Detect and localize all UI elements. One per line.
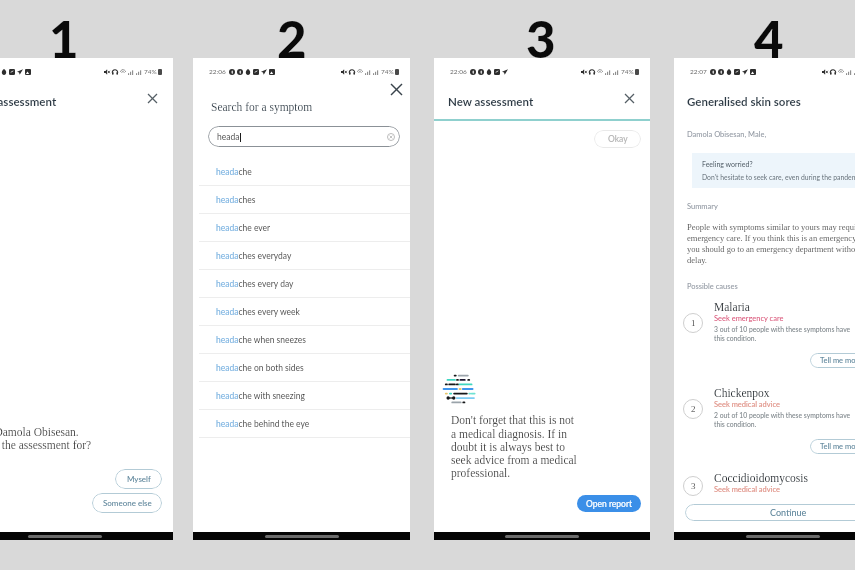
button[interactable]: Close [616, 85, 643, 112]
staticText: Tell me more [820, 356, 855, 365]
button[interactable]: headache behind the eye [193, 410, 410, 438]
staticText: headaches every day [216, 279, 294, 289]
staticText: Seek medical advice [714, 400, 780, 409]
staticText: headache on both sides [216, 363, 304, 373]
staticText: Tell me more [820, 442, 855, 451]
button[interactable]: Someone else [92, 493, 162, 513]
staticText: Chickenpox [714, 387, 770, 400]
button[interactable]: Okay [594, 130, 641, 148]
staticText: Don't forget that this is not a medical … [451, 414, 577, 479]
button[interactable]: Open report [577, 495, 641, 512]
button[interactable]: Tell me more [810, 353, 855, 368]
staticText: Coccidioidomycosis [714, 472, 808, 485]
staticText: 74% [144, 68, 157, 76]
staticText: 2 out of 10 people with these symptoms h… [714, 411, 851, 428]
staticText: Summary [687, 202, 718, 211]
button[interactable]: headache ever [193, 214, 410, 242]
staticText: headache behind the eye [216, 419, 310, 429]
staticText: headaches every week [216, 307, 300, 317]
staticText: Myself [127, 474, 151, 484]
button[interactable]: Close [382, 75, 410, 103]
staticText: 4 [754, 8, 784, 66]
button[interactable]: headache [193, 158, 410, 186]
staticText: Possible causes [687, 282, 738, 291]
staticText: Malaria [714, 301, 750, 314]
button[interactable]: headaches [193, 186, 410, 214]
button[interactable]: heada [208, 126, 400, 147]
staticText: 22:07 [690, 68, 707, 76]
staticText: Someone else [103, 498, 152, 508]
staticText: 22:06 [450, 68, 467, 76]
staticText: Generalised skin sores [687, 95, 801, 109]
staticText: Damola Obisesan, Male, [687, 130, 767, 139]
button[interactable]: headache when sneezes [193, 326, 410, 354]
staticText: 22:06 [209, 68, 226, 76]
button[interactable]: headache on both sides [193, 354, 410, 382]
staticText: Who is the assessment for? [0, 439, 92, 452]
button[interactable]: headache with sneezing [193, 382, 410, 410]
button[interactable]: Tell me more [810, 439, 855, 454]
staticText: Seek medical advice [714, 485, 780, 494]
staticText: headache when sneezes [216, 335, 306, 345]
staticText: People with symptoms similar to yours ma… [687, 222, 855, 265]
staticText: 2 [277, 8, 307, 66]
staticText: 1 [691, 318, 696, 328]
staticText: 3 [526, 8, 556, 66]
staticText: Don't hesitate to seek care, even during… [702, 173, 855, 181]
button[interactable]: headaches every day [193, 270, 410, 298]
staticText: New assessment [448, 95, 534, 109]
staticText: Hello Damola Obisesan. [0, 426, 79, 439]
staticText: 1 [49, 8, 79, 66]
staticText: headache [216, 167, 252, 177]
button[interactable]: Continue [685, 504, 855, 521]
staticText: Feeling worried? [702, 160, 753, 168]
staticText: heada [217, 132, 240, 142]
button[interactable]: headaches every week [193, 298, 410, 326]
staticText: 2 [691, 404, 696, 414]
staticText: headaches [216, 195, 256, 205]
staticText: headache with sneezing [216, 391, 305, 401]
button[interactable]: headaches everyday [193, 242, 410, 270]
button[interactable]: Myself [115, 469, 162, 489]
staticText: headache ever [216, 223, 271, 233]
staticText: Okay [608, 134, 628, 144]
staticText: Continue [770, 507, 807, 518]
staticText: 3 out of 10 people with these symptoms h… [714, 325, 851, 342]
staticText: 74% [621, 68, 634, 76]
staticText: headaches everyday [216, 251, 292, 261]
staticText: New assessment [0, 95, 57, 109]
staticText: 74% [381, 68, 394, 76]
button[interactable]: Close [139, 85, 166, 112]
staticText: Search for a symptom [211, 101, 313, 114]
staticText: Seek emergency care [714, 314, 784, 323]
staticText: Open report [586, 499, 633, 509]
staticText: 3 [691, 481, 696, 491]
